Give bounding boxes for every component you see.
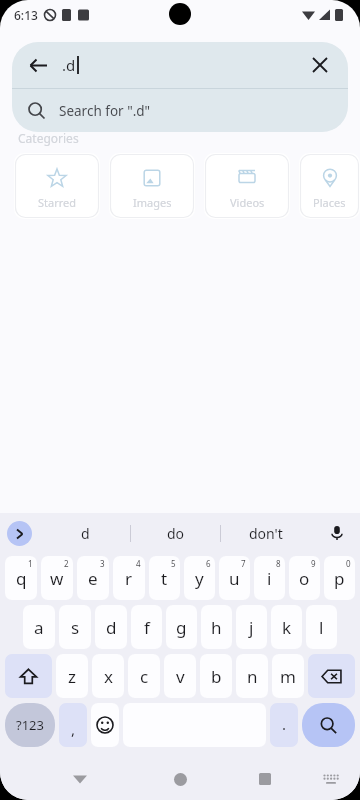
button[interactable]: k — [271, 605, 302, 649]
staticText: d — [106, 616, 117, 639]
staticText: . — [282, 714, 287, 734]
button[interactable]: w — [41, 556, 73, 600]
staticText: w — [50, 567, 64, 590]
button[interactable]: g — [166, 605, 197, 649]
staticText: 3 — [100, 558, 105, 569]
staticText: 9 — [311, 558, 316, 569]
staticText: 4 — [136, 558, 141, 569]
button[interactable]: d — [95, 605, 127, 649]
staticText: e — [88, 567, 98, 590]
button[interactable]: Clear search — [302, 47, 338, 83]
button[interactable]: don't — [221, 513, 310, 553]
button[interactable]: Starred — [14, 153, 100, 219]
staticText: l — [319, 616, 324, 639]
button[interactable]: t — [149, 556, 180, 600]
staticText: x — [104, 665, 113, 688]
button[interactable]: e — [77, 556, 109, 600]
staticText: y — [195, 567, 204, 590]
staticText: 2 — [64, 558, 69, 569]
staticText: o — [299, 567, 310, 590]
staticText: , — [71, 719, 76, 739]
staticText: 1 — [28, 558, 33, 569]
button[interactable]: s — [59, 605, 91, 649]
staticText: q — [16, 567, 27, 590]
staticText: 6:13 — [14, 7, 38, 23]
button[interactable]: do — [131, 513, 220, 553]
button[interactable]: z — [56, 654, 88, 698]
staticText: g — [176, 616, 187, 639]
button[interactable]: More suggestions — [7, 521, 32, 546]
staticText: do — [167, 524, 185, 543]
staticText: Images — [133, 195, 172, 210]
button[interactable]: Search — [302, 703, 355, 747]
staticText: c — [140, 665, 149, 688]
button[interactable]: Switch keyboard — [314, 762, 348, 796]
staticText: b — [211, 665, 222, 688]
button[interactable]: Images — [109, 153, 195, 219]
staticText: s — [71, 616, 80, 639]
button[interactable]: y — [184, 556, 215, 600]
staticText: n — [247, 665, 258, 688]
button[interactable]: Home — [160, 759, 200, 799]
staticText: Videos — [230, 195, 265, 210]
button[interactable]: f — [131, 605, 162, 649]
staticText: d — [81, 524, 90, 543]
button[interactable]: a — [23, 605, 55, 649]
button[interactable]: , — [59, 703, 87, 747]
button[interactable]: b — [200, 654, 232, 698]
button[interactable]: Videos — [204, 153, 290, 219]
button[interactable]: q — [5, 556, 37, 600]
button[interactable]: u — [219, 556, 250, 600]
button[interactable]: Places — [299, 153, 360, 219]
button[interactable]: Search for ".d" — [12, 89, 348, 132]
button[interactable]: Back — [60, 759, 100, 799]
button[interactable]: h — [201, 605, 232, 649]
staticText: 7 — [241, 558, 246, 569]
staticText: t — [161, 567, 168, 590]
button[interactable]: Backspace — [308, 654, 355, 698]
staticText: .d — [62, 55, 76, 75]
button[interactable]: p — [324, 556, 355, 600]
button[interactable]: Voice input — [322, 518, 352, 548]
staticText: k — [282, 616, 292, 639]
button[interactable]: c — [128, 654, 160, 698]
staticText: m — [280, 665, 296, 688]
button[interactable]: i — [254, 556, 285, 600]
staticText: z — [68, 665, 76, 688]
staticText: Places — [313, 195, 346, 210]
button[interactable]: r — [113, 556, 145, 600]
staticText: f — [144, 616, 150, 639]
staticText: j — [249, 616, 254, 639]
staticText: a — [34, 616, 44, 639]
staticText: Categories — [18, 130, 79, 146]
button[interactable]: j — [236, 605, 267, 649]
button[interactable]: d — [40, 513, 130, 553]
button[interactable]: m — [272, 654, 304, 698]
staticText: 6 — [206, 558, 211, 569]
button[interactable]: x — [92, 654, 124, 698]
staticText: ?123 — [16, 716, 44, 734]
staticText: i — [267, 567, 272, 590]
button[interactable]: ?123 — [5, 703, 55, 747]
button[interactable]: Recents — [245, 759, 285, 799]
button[interactable]: . — [270, 703, 298, 747]
staticText: u — [229, 567, 240, 590]
staticText: v — [176, 665, 185, 688]
staticText: Search for ".d" — [59, 102, 151, 120]
staticText: 8 — [276, 558, 281, 569]
staticText: h — [211, 616, 222, 639]
button[interactable]: o — [289, 556, 320, 600]
button[interactable]: v — [164, 654, 196, 698]
button[interactable]: n — [236, 654, 268, 698]
staticText: p — [334, 567, 345, 590]
button[interactable]: Emoji — [91, 703, 119, 747]
staticText: don't — [249, 524, 283, 543]
staticText: r — [125, 567, 133, 590]
staticText: 5 — [171, 558, 176, 569]
button[interactable]: Shift — [5, 654, 52, 698]
staticText: Starred — [38, 195, 77, 210]
button[interactable]: l — [306, 605, 337, 649]
button[interactable]: Back — [18, 45, 58, 85]
staticText: 0 — [346, 558, 351, 569]
